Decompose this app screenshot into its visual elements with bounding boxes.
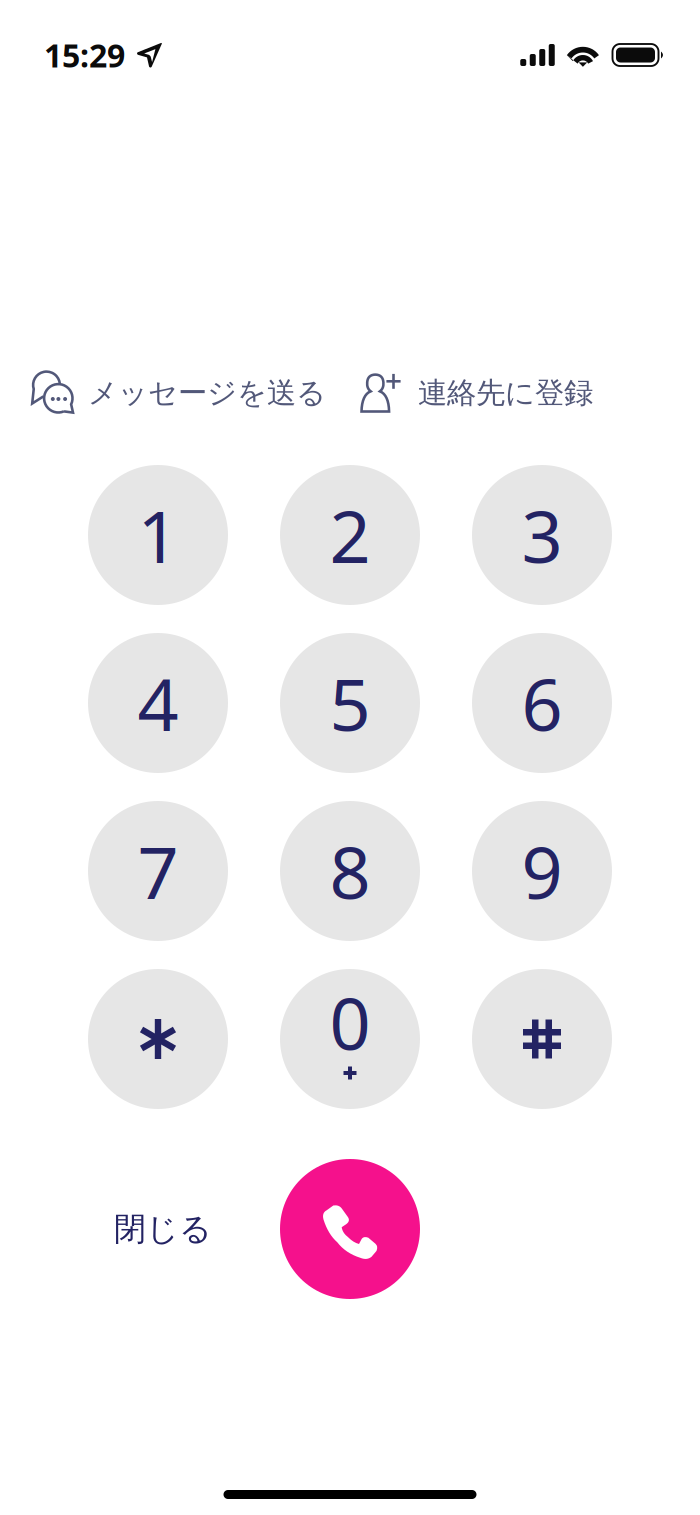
button[interactable]: 閉じる: [114, 1207, 212, 1251]
button[interactable]: 0: [280, 969, 420, 1109]
button[interactable]: 1: [88, 465, 228, 605]
staticText: 0: [329, 974, 370, 1070]
button[interactable]: 連絡先に登録: [360, 371, 593, 415]
button[interactable]: 8: [280, 801, 420, 941]
staticText: 8: [329, 823, 370, 919]
staticText: 閉じる: [114, 1209, 212, 1249]
staticText: 5: [329, 655, 370, 751]
staticText: 6: [521, 655, 562, 751]
staticText: 連絡先に登録: [418, 375, 593, 411]
staticText: 2: [329, 487, 370, 583]
staticText: 9: [521, 823, 562, 919]
staticText: 3: [521, 487, 562, 583]
staticText: 7: [137, 823, 178, 919]
button[interactable]: 4: [88, 633, 228, 773]
button[interactable]: 5: [280, 633, 420, 773]
staticText: 1: [137, 487, 178, 583]
button[interactable]: Pound: [472, 969, 612, 1109]
button[interactable]: Call: [280, 1159, 420, 1299]
button[interactable]: メッセージを送る: [31, 371, 326, 415]
button[interactable]: 7: [88, 801, 228, 941]
button[interactable]: 3: [472, 465, 612, 605]
button[interactable]: 6: [472, 633, 612, 773]
staticText: メッセージを送る: [88, 375, 326, 411]
button[interactable]: Star: [88, 969, 228, 1109]
button[interactable]: 9: [472, 801, 612, 941]
button[interactable]: 2: [280, 465, 420, 605]
staticText: 15:29: [44, 34, 125, 76]
staticText: 4: [137, 655, 178, 751]
